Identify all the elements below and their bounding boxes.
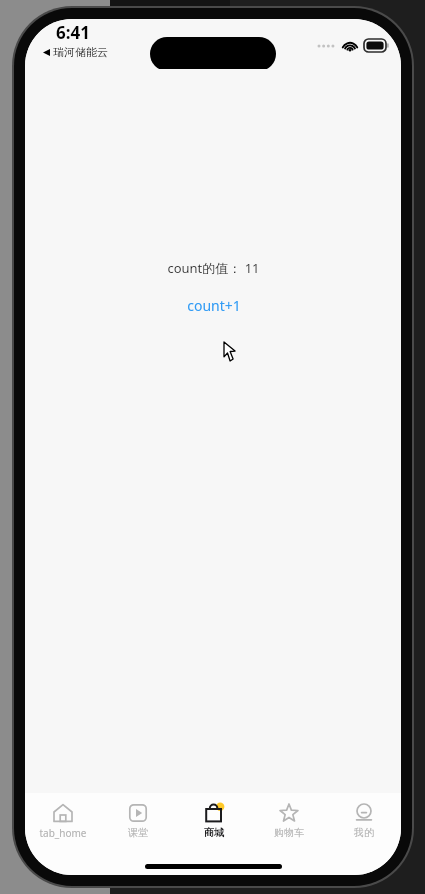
button[interactable]: 我的 xyxy=(326,793,401,849)
staticText: 瑞河储能云 xyxy=(53,45,108,59)
staticText: 课堂 xyxy=(128,826,148,839)
staticText: tab_home xyxy=(39,826,87,840)
staticText: count的值： 11 xyxy=(167,259,260,277)
button[interactable]: count+1 xyxy=(181,294,247,317)
staticText: 6:41 xyxy=(56,21,90,44)
button[interactable]: 商城 xyxy=(176,793,251,849)
button[interactable]: 购物车 xyxy=(251,793,326,849)
staticText: 商城 xyxy=(204,826,224,839)
staticText: 我的 xyxy=(354,826,374,839)
button[interactable]: tab_home xyxy=(25,793,100,849)
button[interactable]: 课堂 xyxy=(100,793,175,849)
staticText: 购物车 xyxy=(274,826,304,839)
staticText: count+1 xyxy=(187,296,241,315)
